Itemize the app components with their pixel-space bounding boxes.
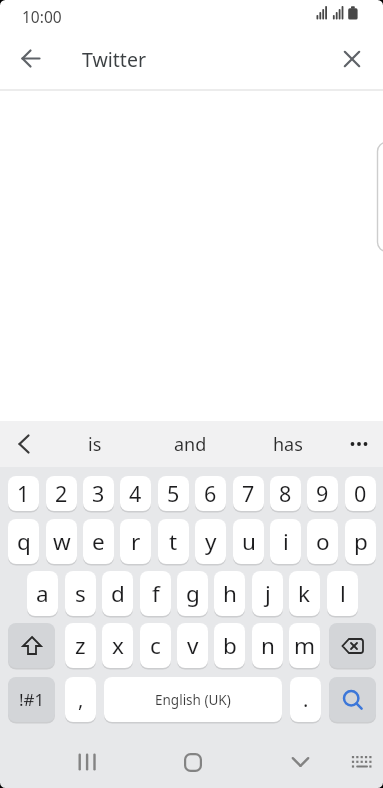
staticText: 10:00 [22, 6, 62, 24]
staticText: m [294, 630, 316, 661]
staticText: e [92, 526, 105, 557]
button[interactable]: u [233, 519, 264, 564]
button[interactable]: 2 [46, 476, 77, 511]
staticText: 0 [354, 479, 367, 508]
staticText: 8 [279, 479, 292, 508]
staticText: i [283, 526, 289, 557]
button[interactable]: g [177, 571, 208, 616]
staticText: y [205, 526, 217, 557]
button[interactable] [172, 741, 214, 783]
button[interactable]: 9 [307, 476, 338, 511]
button[interactable]: . [290, 677, 321, 722]
staticText: English (UK) [155, 691, 231, 709]
button[interactable]: o [307, 519, 338, 564]
staticText: r [131, 526, 141, 557]
button[interactable]: l [327, 571, 358, 616]
button[interactable]: r [120, 519, 151, 564]
staticText: has [273, 432, 303, 457]
staticText: 1 [17, 479, 30, 508]
button[interactable] [329, 677, 376, 722]
button[interactable]: h [214, 571, 245, 616]
staticText: g [186, 578, 200, 609]
button[interactable]: !#1 [8, 677, 55, 722]
button[interactable] [13, 41, 49, 77]
button[interactable]: y [195, 519, 226, 564]
staticText: b [223, 630, 237, 661]
button[interactable]: 0 [345, 476, 376, 511]
button[interactable]: has [241, 421, 335, 467]
staticText: 4 [129, 479, 142, 508]
button[interactable] [279, 741, 321, 783]
staticText: s [75, 578, 86, 609]
staticText: z [75, 630, 86, 661]
staticText: f [152, 578, 160, 609]
button[interactable] [334, 41, 370, 77]
button[interactable]: 6 [195, 476, 226, 511]
button[interactable]: 7 [233, 476, 264, 511]
staticText: p [354, 526, 368, 557]
staticText: 5 [167, 479, 180, 508]
staticText: o [316, 526, 330, 557]
staticText: q [17, 526, 31, 557]
staticText: u [242, 526, 256, 557]
staticText: 9 [316, 479, 329, 508]
button[interactable]: 3 [83, 476, 114, 511]
staticText: d [111, 578, 125, 609]
button[interactable]: f [140, 571, 171, 616]
button[interactable] [66, 741, 108, 783]
button[interactable]: m [289, 623, 320, 668]
staticText: and [174, 432, 207, 457]
button[interactable] [329, 623, 376, 668]
button[interactable] [0, 421, 48, 467]
button[interactable]: English (UK) [104, 677, 282, 722]
staticText: w [53, 526, 71, 557]
button[interactable]: a [27, 571, 58, 616]
button[interactable]: j [252, 571, 283, 616]
staticText: t [169, 526, 178, 557]
button[interactable]: w [46, 519, 77, 564]
button[interactable]: and [143, 421, 237, 467]
button[interactable]: c [140, 623, 171, 668]
button[interactable]: v [177, 623, 208, 668]
staticText: c [150, 630, 161, 661]
staticText: k [298, 578, 311, 609]
button[interactable]: t [158, 519, 189, 564]
button[interactable]: s [65, 571, 96, 616]
button[interactable] [8, 623, 55, 668]
staticText: !#1 [19, 688, 45, 711]
button[interactable]: 1 [8, 476, 39, 511]
button[interactable]: 5 [158, 476, 189, 511]
staticText: 6 [204, 479, 217, 508]
staticText: a [36, 578, 49, 609]
staticText: Twitter [82, 46, 146, 73]
button[interactable]: q [8, 519, 39, 564]
button[interactable]: p [345, 519, 376, 564]
staticText: is [88, 432, 102, 457]
button[interactable]: b [214, 623, 245, 668]
staticText: 2 [55, 479, 68, 508]
button[interactable] [347, 748, 377, 776]
staticText: n [261, 630, 275, 661]
button[interactable]: n [252, 623, 283, 668]
button[interactable]: x [102, 623, 133, 668]
staticText: . [303, 686, 309, 713]
button[interactable]: , [65, 677, 96, 722]
staticText: , [78, 686, 84, 713]
staticText: j [265, 578, 271, 609]
staticText: 7 [242, 479, 255, 508]
button[interactable]: i [270, 519, 301, 564]
button[interactable]: 4 [120, 476, 151, 511]
staticText: h [223, 578, 237, 609]
button[interactable]: 8 [270, 476, 301, 511]
button[interactable]: e [83, 519, 114, 564]
staticText: v [187, 630, 199, 661]
button[interactable]: is [48, 421, 142, 467]
button[interactable] [335, 421, 383, 467]
staticText: l [340, 578, 346, 609]
staticText: 3 [92, 479, 105, 508]
button[interactable]: z [65, 623, 96, 668]
button[interactable]: k [289, 571, 320, 616]
button[interactable]: d [102, 571, 133, 616]
staticText: x [112, 630, 124, 661]
